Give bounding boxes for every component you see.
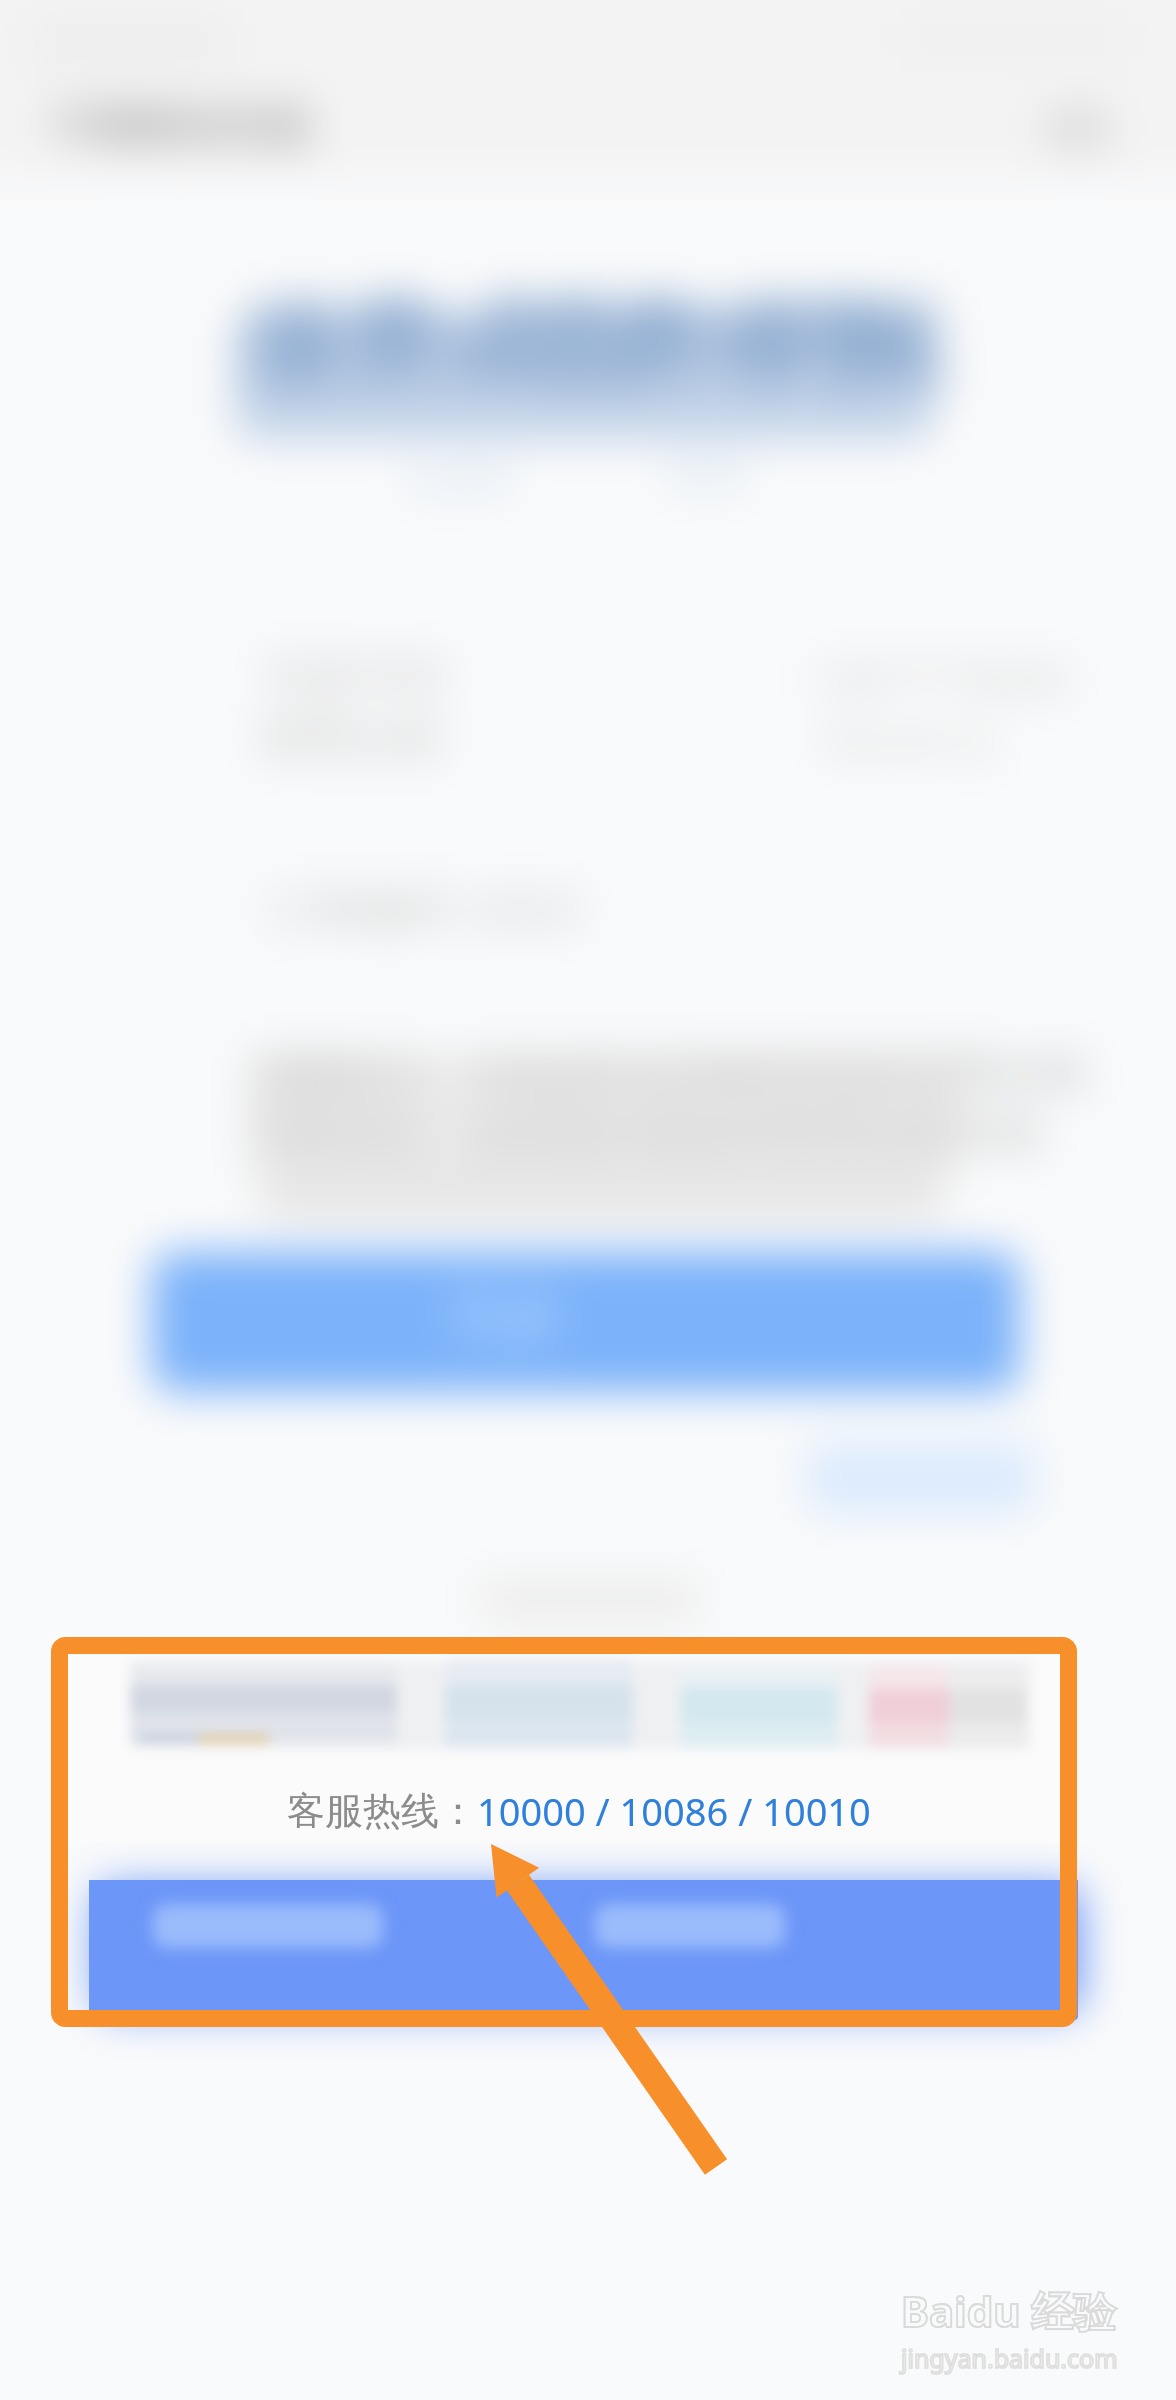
staticText: 缴费成功 xyxy=(248,286,632,407)
staticText: 内到 xyxy=(664,450,748,503)
staticText: 10000 / 10086 / 10010 xyxy=(477,1785,871,1837)
staticText: 到账 xyxy=(756,286,948,407)
staticText: 温馨提示：充值成功后请留意您的话费余额 xyxy=(250,1046,1086,1101)
staticText: 客服热线： xyxy=(287,1787,477,1835)
button[interactable] xyxy=(89,1880,1078,2020)
staticText: 话费将于 xyxy=(512,286,896,407)
staticText: 中国移动充值 xyxy=(52,100,310,154)
other: Highlight annotation xyxy=(0,0,1176,2400)
staticText: Baidu 经验 xyxy=(901,2282,1116,2339)
button[interactable]: Back xyxy=(20,80,310,172)
staticText: 5分钟 xyxy=(404,450,513,507)
staticText: 到账情况，如有疑问请及时联系在线客服 xyxy=(250,1106,1042,1161)
button[interactable]: 完成 xyxy=(152,1252,1020,1392)
button[interactable]: 客服热线： xyxy=(287,1785,871,1837)
button[interactable]: More options xyxy=(1026,86,1130,172)
staticText: jingyan.baidu.com xyxy=(901,2341,1118,2375)
